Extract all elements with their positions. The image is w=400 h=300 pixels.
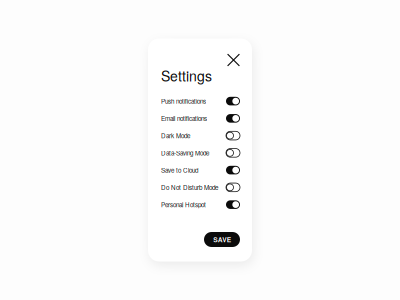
staticText: Save to Cloud bbox=[161, 166, 198, 175]
button[interactable]: Do Not Disturb Mode bbox=[161, 179, 240, 196]
staticText: Dark Mode bbox=[161, 131, 190, 140]
button[interactable]: Dark Mode bbox=[161, 127, 240, 144]
staticText: Settings bbox=[161, 65, 212, 85]
button[interactable]: Close bbox=[227, 53, 240, 66]
button[interactable]: Save to Cloud bbox=[161, 161, 240, 179]
button[interactable]: Data-Saving Mode bbox=[161, 144, 240, 161]
button[interactable]: Push notifications bbox=[161, 92, 240, 110]
staticText: Personal Hotspot bbox=[161, 200, 206, 209]
staticText: Push notifications bbox=[161, 97, 206, 106]
staticText: Email notifications bbox=[161, 114, 207, 123]
staticText: Data-Saving Mode bbox=[161, 148, 209, 157]
button[interactable]: Email notifications bbox=[161, 110, 240, 127]
staticText: SAVE bbox=[213, 235, 231, 244]
button[interactable]: Personal Hotspot bbox=[161, 196, 240, 213]
staticText: Do Not Disturb Mode bbox=[161, 183, 218, 192]
button[interactable]: SAVE bbox=[204, 232, 240, 247]
